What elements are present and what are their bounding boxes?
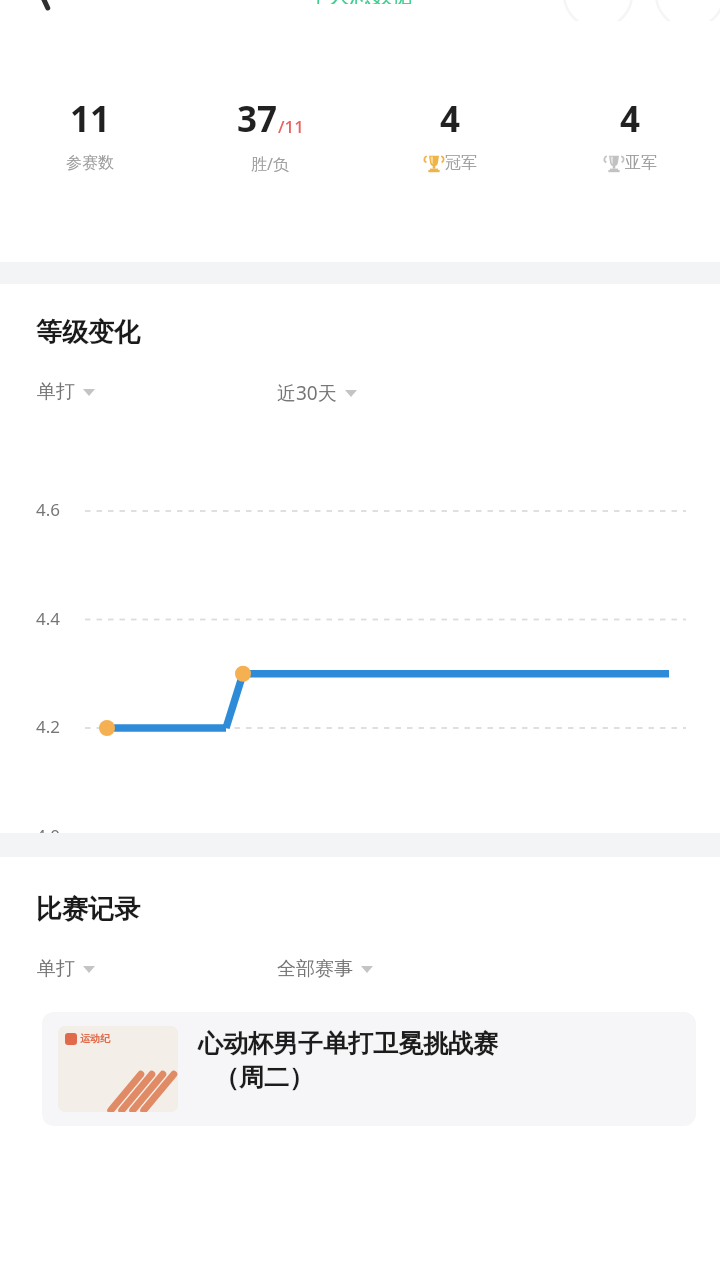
staticText: 12/16 <box>464 853 510 876</box>
button[interactable]: 单打 <box>36 377 96 407</box>
staticText: 11 <box>70 95 111 143</box>
staticText: （周二） <box>214 1062 314 1093</box>
staticText: 12/23 <box>597 853 643 876</box>
staticText: 参赛数 <box>66 153 114 173</box>
staticText: 亚军 <box>625 153 657 173</box>
button[interactable]: 37 <box>180 21 360 262</box>
staticText: 37 <box>237 95 278 143</box>
staticText: 单打 <box>37 380 75 404</box>
staticText: 等级变化 <box>36 316 140 349</box>
staticText: 胜/负 <box>251 153 289 175</box>
staticText: 11/25 <box>58 853 104 876</box>
staticText: 冠军 <box>445 153 477 173</box>
button[interactable]: 4 <box>360 21 540 262</box>
staticText: 运动纪 <box>80 1032 110 1045</box>
staticText: 单打 <box>37 957 75 981</box>
button[interactable]: 单打 <box>36 954 96 984</box>
staticText: 比赛记录 <box>36 893 140 926</box>
staticText: 全部赛事 <box>277 957 353 981</box>
staticText: 4.4 <box>36 607 61 630</box>
staticText: 4 <box>620 95 641 143</box>
staticText: 12/02 <box>194 853 240 876</box>
button[interactable]: 11 <box>0 21 180 262</box>
staticText: 心动杯男子单打卫冕挑战赛 <box>198 1028 498 1059</box>
button[interactable]: 近30天 <box>276 377 358 409</box>
staticText: 4.0 <box>36 824 61 847</box>
staticText: 个人总数据 <box>308 0 413 4</box>
staticText: 4.6 <box>36 498 61 521</box>
button[interactable]: 4 <box>540 21 720 262</box>
staticText: 12/09 <box>329 853 375 876</box>
staticText: 4 <box>440 95 461 143</box>
staticText: 4.2 <box>36 715 61 738</box>
button[interactable]: Back <box>22 0 68 21</box>
button[interactable]: 运动纪 <box>42 1012 696 1126</box>
button[interactable]: 全部赛事 <box>276 954 374 984</box>
staticText: /11 <box>278 115 304 138</box>
staticText: 12/25 <box>622 853 668 876</box>
staticText: 近30天 <box>277 380 337 406</box>
